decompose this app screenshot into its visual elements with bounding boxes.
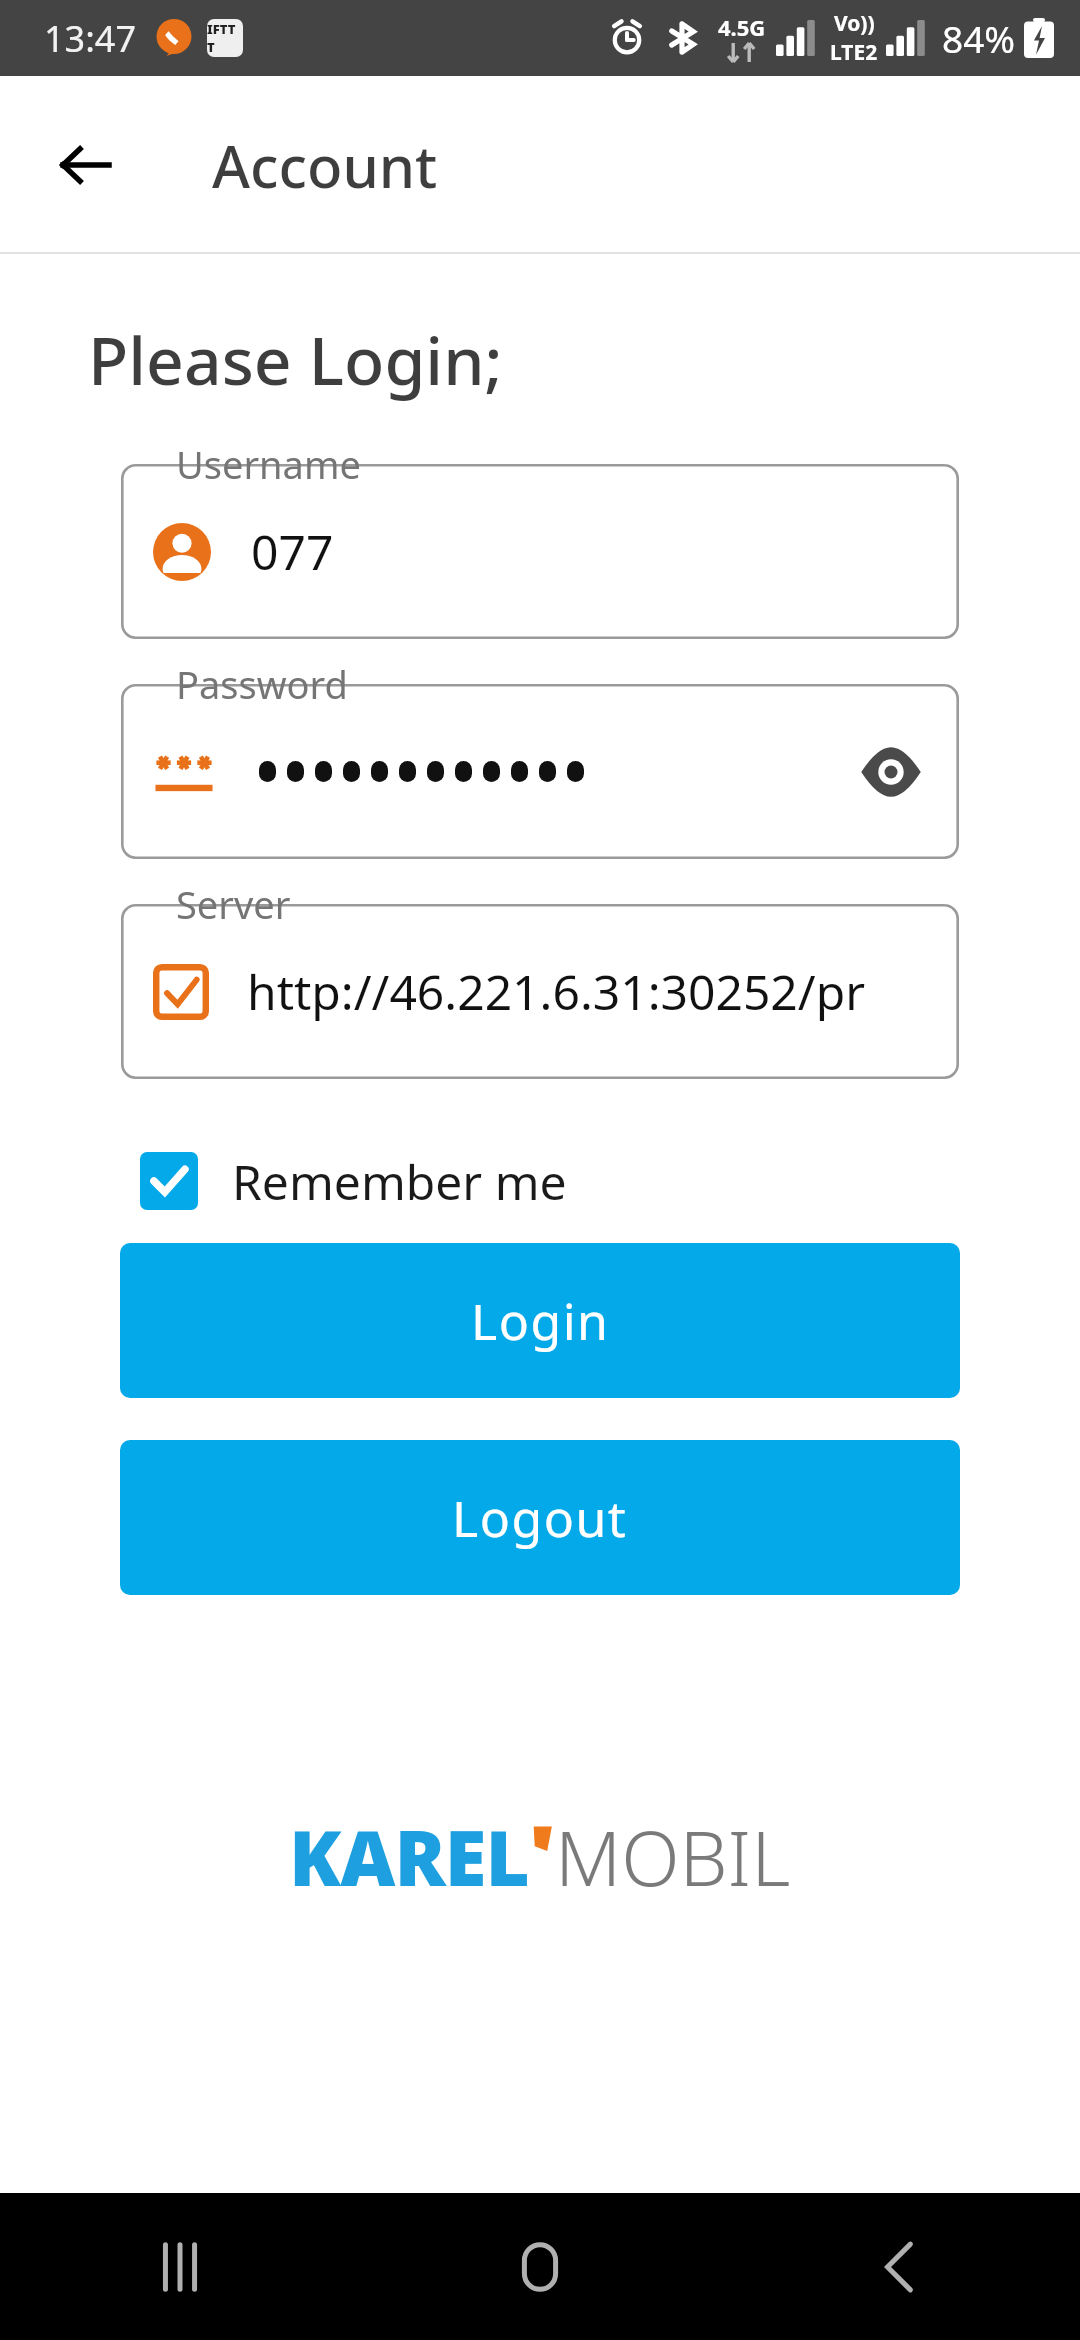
staticText: Vo)) xyxy=(834,9,875,38)
staticText: Logout xyxy=(452,1484,628,1552)
staticText: Please Login; xyxy=(88,314,503,404)
staticText: 077 xyxy=(251,519,334,584)
staticText: 4.5G xyxy=(718,12,766,42)
staticText: KAREL xyxy=(289,1805,529,1909)
staticText: Password xyxy=(176,658,348,710)
staticText: Remember me xyxy=(232,1149,567,1214)
button[interactable]: Toggle password visibility xyxy=(851,732,931,812)
button[interactable]: Home xyxy=(360,2193,720,2340)
staticText: Login xyxy=(471,1287,610,1355)
button[interactable]: Login xyxy=(120,1243,960,1398)
button[interactable]: Logout xyxy=(120,1440,960,1595)
button[interactable]: Back xyxy=(42,122,128,208)
button[interactable]: Recents xyxy=(0,2193,360,2340)
staticText: MOBIL xyxy=(555,1805,791,1909)
staticText: Account xyxy=(212,126,438,205)
staticText: LTE2 xyxy=(830,38,878,67)
staticText: http://46.221.6.31:30252/pr xyxy=(247,959,866,1024)
staticText: IFTTT xyxy=(207,20,243,56)
staticText: Username xyxy=(176,438,361,490)
button[interactable]: Remember me xyxy=(140,1141,567,1221)
staticText: 13:47 xyxy=(44,14,137,63)
staticText: Server xyxy=(176,878,291,930)
staticText: 84% xyxy=(942,13,1016,63)
button[interactable]: Back xyxy=(720,2193,1080,2340)
